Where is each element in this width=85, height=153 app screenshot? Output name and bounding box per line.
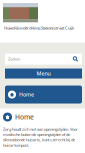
- button[interactable]: Menu: [5, 68, 82, 78]
- staticText: Menu: [36, 70, 50, 77]
- button[interactable]: Home: [5, 85, 82, 103]
- staticText: Home: [15, 113, 34, 121]
- staticText: Home: [19, 91, 34, 98]
- staticText: Zorg houdt zich niet aan openingstijden.…: [3, 126, 78, 148]
- button[interactable]: Zoeken: [5, 53, 82, 64]
- staticText: Huwelijksvoltrekking Stationsstraat Cuij…: [4, 25, 74, 30]
- staticText: Zoeken: [8, 56, 20, 62]
